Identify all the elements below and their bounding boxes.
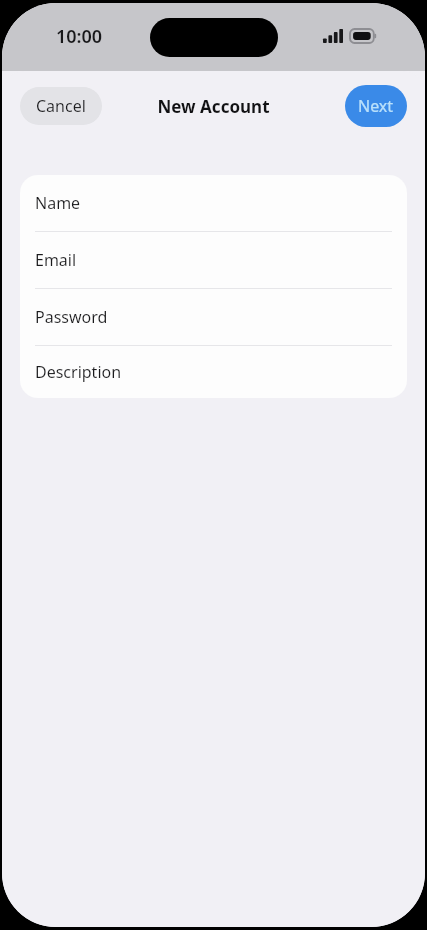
staticText: Description <box>35 361 122 383</box>
button[interactable]: Email <box>20 232 407 288</box>
staticText: 10:00 <box>56 24 103 49</box>
button[interactable]: Next <box>345 85 407 127</box>
button[interactable]: Name <box>20 175 407 231</box>
staticText: New Account <box>157 95 270 118</box>
staticText: Cancel <box>36 95 86 117</box>
staticText: Next <box>358 95 394 117</box>
button[interactable]: Password <box>20 289 407 345</box>
button[interactable]: Description <box>20 346 407 398</box>
staticText: Email <box>35 249 77 271</box>
button[interactable]: Cancel <box>20 87 102 125</box>
staticText: Password <box>35 306 108 328</box>
staticText: Name <box>35 192 81 214</box>
